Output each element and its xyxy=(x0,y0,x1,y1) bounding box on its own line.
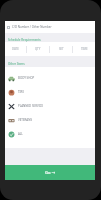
button[interactable]: PLANNED SERVICE xyxy=(5,99,95,113)
button[interactable]: VETERANS xyxy=(5,113,95,127)
staticText: QTY xyxy=(35,47,41,51)
staticText: ALL xyxy=(18,132,23,136)
staticText: Other Items xyxy=(8,62,25,66)
button[interactable]: TIRE xyxy=(5,85,95,99)
button[interactable]: SET xyxy=(50,42,72,56)
button[interactable]: C/D Number / Other Number xyxy=(5,21,95,33)
staticText: DATE xyxy=(12,47,19,51)
staticText: Schedule Requirements xyxy=(8,38,41,42)
staticText: SET xyxy=(59,47,64,51)
button[interactable]: ALL xyxy=(5,127,95,141)
staticText: Go → xyxy=(45,170,56,176)
button[interactable]: DATE xyxy=(5,42,26,56)
staticText: PLANNED SERVICE xyxy=(18,104,44,108)
button[interactable]: TIME xyxy=(73,42,95,56)
staticText: BODY SHOP xyxy=(18,76,35,80)
staticText: C/D Number / Other Number xyxy=(12,25,52,29)
button[interactable]: BODY SHOP xyxy=(5,71,95,85)
button[interactable]: Go → xyxy=(5,165,95,180)
staticText: TIRE xyxy=(18,90,24,94)
staticText: TIME xyxy=(81,47,88,51)
staticText: VETERANS xyxy=(18,118,32,122)
button[interactable]: QTY xyxy=(27,42,49,56)
